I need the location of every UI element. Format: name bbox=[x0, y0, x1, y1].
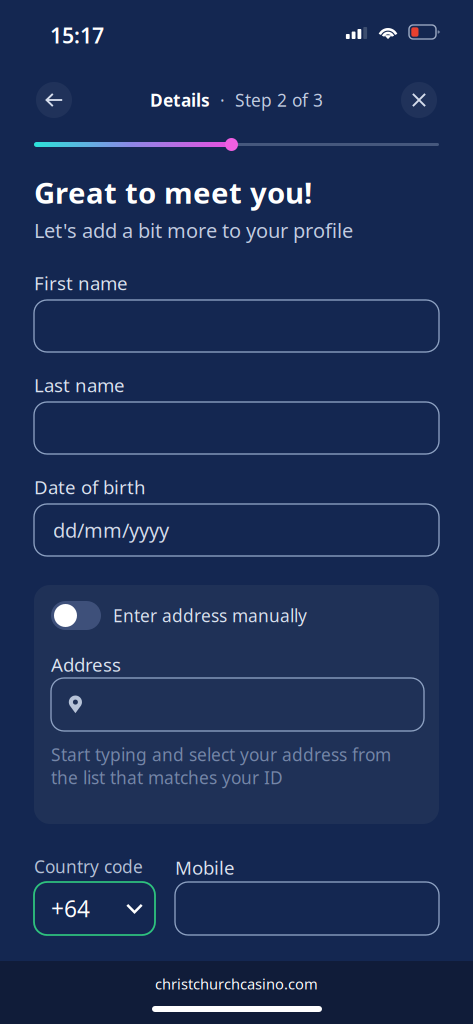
button[interactable]: Back bbox=[36, 82, 72, 118]
staticText: +64 bbox=[51, 893, 90, 923]
staticText: Country code bbox=[34, 855, 143, 873]
button[interactable]: Close bbox=[401, 82, 437, 118]
staticText: Enter address manually bbox=[113, 604, 307, 627]
staticText: Address bbox=[51, 652, 121, 670]
staticText: Start typing and select your address fro… bbox=[51, 743, 391, 789]
staticText: Mobile bbox=[175, 855, 235, 873]
staticText: 15:17 bbox=[50, 21, 104, 43]
staticText: · Step 2 of 3 bbox=[210, 88, 323, 111]
button[interactable]: +64 bbox=[34, 882, 155, 935]
staticText: Details bbox=[150, 88, 210, 111]
staticText: Date of birth bbox=[34, 475, 146, 499]
staticText: Great to meet you! bbox=[34, 173, 312, 205]
staticText: First name bbox=[34, 271, 128, 295]
staticText: Let's add a bit more to your profile bbox=[34, 217, 353, 241]
staticText: dd/mm/yyyy bbox=[53, 517, 169, 543]
button[interactable]: Enter address manually bbox=[51, 601, 351, 630]
staticText: Last name bbox=[34, 373, 125, 397]
staticText: christchurchcasino.com bbox=[155, 974, 318, 992]
